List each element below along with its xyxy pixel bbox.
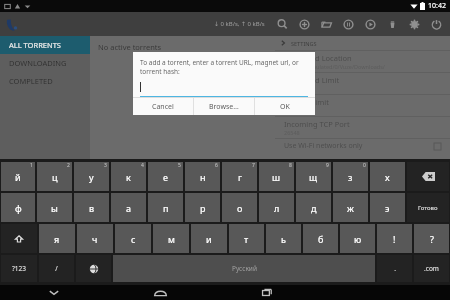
button[interactable]: Add torrent: [293, 13, 315, 35]
button[interactable]: ?: [414, 224, 449, 253]
staticText: 3: [104, 162, 107, 169]
staticText: .com: [424, 264, 439, 273]
staticText: 0 kB/s: [284, 107, 300, 114]
button[interactable]: ш: [259, 162, 294, 191]
button[interactable]: Change language: [76, 255, 111, 282]
button[interactable]: а: [111, 193, 146, 222]
button[interactable]: Backspace: [407, 162, 449, 191]
button[interactable]: щ: [296, 162, 331, 191]
button[interactable]: Download Limit: [275, 73, 450, 94]
staticText: Use Wi-Fi networks only: [284, 141, 363, 151]
staticText: Cancel: [152, 102, 174, 112]
button[interactable]: ж: [333, 193, 368, 222]
button[interactable]: ю: [340, 224, 375, 253]
staticText: 6: [215, 162, 218, 169]
button[interactable]: Русский: [113, 255, 375, 282]
staticText: э: [385, 202, 390, 214]
staticText: ?: [430, 233, 434, 245]
button[interactable]: Home: [107, 285, 214, 300]
button[interactable]: DOWNLOADING: [0, 54, 90, 72]
button[interactable]: х: [370, 162, 405, 191]
staticText: 2: [67, 162, 70, 169]
button[interactable]: Cancel: [133, 98, 193, 115]
staticText: Русский: [232, 264, 257, 273]
staticText: 26548: [284, 129, 300, 136]
staticText: /: [55, 264, 58, 273]
button[interactable]: ALL TORRENTS: [0, 36, 90, 54]
button[interactable]: Resume all: [359, 13, 381, 35]
button[interactable]: ч: [77, 224, 113, 253]
button[interactable]: э: [370, 193, 405, 222]
button[interactable]: п: [148, 193, 183, 222]
button[interactable]: Use Wi-Fi networks only: [275, 139, 450, 153]
button[interactable]: COMPLETED: [0, 72, 90, 90]
button[interactable]: с: [115, 224, 151, 253]
button[interactable]: Browse…: [194, 98, 254, 115]
button[interactable]: з: [333, 162, 368, 191]
staticText: е: [163, 171, 168, 183]
button[interactable]: е: [148, 162, 183, 191]
staticText: щ: [309, 171, 318, 183]
staticText: .: [394, 264, 396, 273]
button[interactable]: !: [377, 224, 412, 253]
button[interactable]: /: [39, 255, 74, 282]
button[interactable]: ь: [266, 224, 301, 253]
button[interactable]: в: [74, 193, 109, 222]
button[interactable]: Search: [271, 13, 293, 35]
button[interactable]: Power: [425, 13, 447, 35]
button[interactable]: Pause all: [337, 13, 359, 35]
staticText: To add a torrent, enter a torrent URL, m…: [140, 58, 310, 76]
button[interactable]: Vuze logo: [5, 16, 22, 33]
button[interactable]: ф: [1, 193, 35, 222]
button[interactable]: .: [377, 255, 412, 282]
staticText: ф: [15, 202, 22, 214]
button[interactable]: ц: [37, 162, 72, 191]
button[interactable]: Готово: [407, 193, 449, 222]
button[interactable]: Incoming TCP Port: [275, 117, 450, 138]
button[interactable]: Shift: [1, 224, 37, 253]
button[interactable]: н: [185, 162, 220, 191]
staticText: т: [244, 233, 249, 245]
staticText: /storage/emulated/0/Vuze/Downloads/: [284, 63, 385, 70]
staticText: а: [126, 202, 132, 214]
staticText: з: [348, 171, 353, 183]
button[interactable]: ?123: [1, 255, 37, 282]
button[interactable]: Upload Limit: [275, 95, 450, 116]
staticText: в: [89, 202, 95, 214]
button[interactable]: Download Location: [275, 51, 450, 72]
button[interactable]: б: [303, 224, 338, 253]
button[interactable]: OK: [255, 98, 315, 115]
button[interactable]: й: [1, 162, 35, 191]
button[interactable]: р: [185, 193, 220, 222]
staticText: 5: [178, 162, 181, 169]
button[interactable]: Open torrent: [315, 13, 337, 35]
button[interactable]: Hide keyboard: [0, 285, 107, 300]
button[interactable]: м: [153, 224, 189, 253]
button[interactable]: SETTINGS: [275, 36, 450, 50]
staticText: 8: [289, 162, 292, 169]
staticText: д: [311, 202, 317, 214]
button[interactable]: [133, 76, 315, 97]
staticText: у: [89, 171, 94, 183]
button[interactable]: я: [39, 224, 75, 253]
staticText: ы: [51, 202, 58, 214]
staticText: п: [163, 202, 169, 214]
button[interactable]: у: [74, 162, 109, 191]
button[interactable]: ы: [37, 193, 72, 222]
button[interactable]: Settings: [403, 13, 425, 35]
button[interactable]: д: [296, 193, 331, 222]
button[interactable]: Recent apps: [214, 285, 321, 300]
button[interactable]: к: [111, 162, 146, 191]
button[interactable]: л: [259, 193, 294, 222]
staticText: Browse…: [209, 102, 239, 112]
staticText: м: [168, 233, 175, 245]
button[interactable]: о: [222, 193, 257, 222]
button[interactable]: .com: [414, 255, 449, 282]
staticText: я: [54, 233, 60, 245]
button[interactable]: Delete: [381, 13, 403, 35]
staticText: ж: [347, 202, 354, 214]
button[interactable]: т: [229, 224, 264, 253]
button[interactable]: г: [222, 162, 257, 191]
staticText: ш: [272, 171, 281, 183]
button[interactable]: и: [191, 224, 227, 253]
